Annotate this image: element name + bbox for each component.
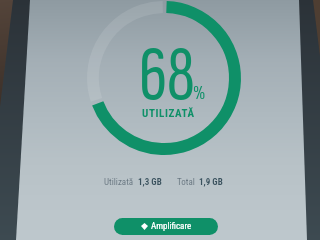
staticText: 1,3 GB [138, 177, 162, 188]
staticText: 1,9 GB [199, 177, 223, 188]
staticText: Total [177, 177, 195, 188]
staticText: 68 [139, 29, 195, 124]
staticText: UTILIZATĂ [142, 107, 195, 120]
staticText: Amplificare [151, 221, 192, 232]
staticText: % [193, 80, 206, 105]
button[interactable]: Amplificare [114, 218, 218, 235]
staticText: Utilizată [104, 177, 134, 188]
